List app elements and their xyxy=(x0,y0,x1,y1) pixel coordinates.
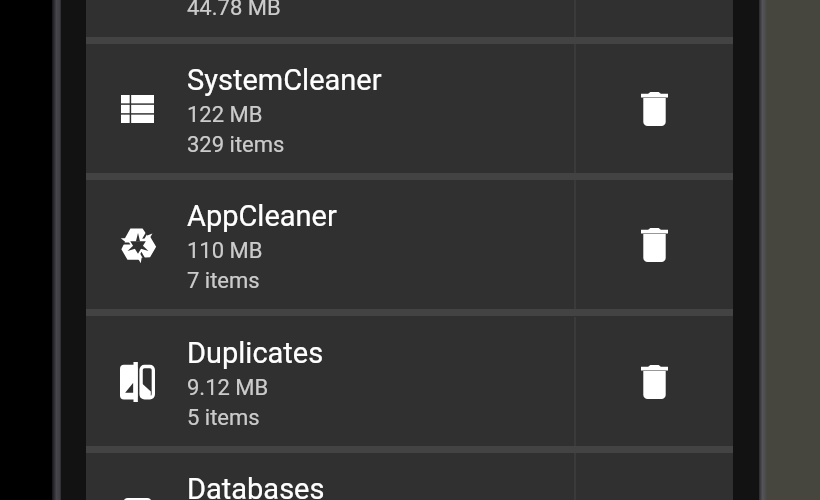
staticText: Duplicates xyxy=(187,336,324,370)
staticText: Databases xyxy=(187,472,325,500)
staticText: 5 items xyxy=(187,405,260,431)
button[interactable]: CorpseFinder xyxy=(86,0,733,37)
staticText: 44.78 MB xyxy=(187,0,281,21)
staticText: 110 MB xyxy=(187,238,263,264)
button[interactable]: Delete xyxy=(575,180,733,309)
staticText: 329 items xyxy=(187,132,285,158)
button[interactable]: SystemCleaner xyxy=(86,44,733,173)
staticText: SystemCleaner xyxy=(187,63,382,97)
button[interactable]: Databases xyxy=(86,453,733,500)
staticText: 7 items xyxy=(187,268,260,294)
button[interactable]: Delete xyxy=(575,44,733,173)
staticText: 9.12 MB xyxy=(187,375,269,401)
button[interactable]: Duplicates xyxy=(86,317,733,446)
staticText: AppCleaner xyxy=(187,199,337,233)
button[interactable]: AppCleaner xyxy=(86,180,733,309)
button[interactable]: Delete xyxy=(575,317,733,446)
staticText: 122 MB xyxy=(187,102,263,128)
